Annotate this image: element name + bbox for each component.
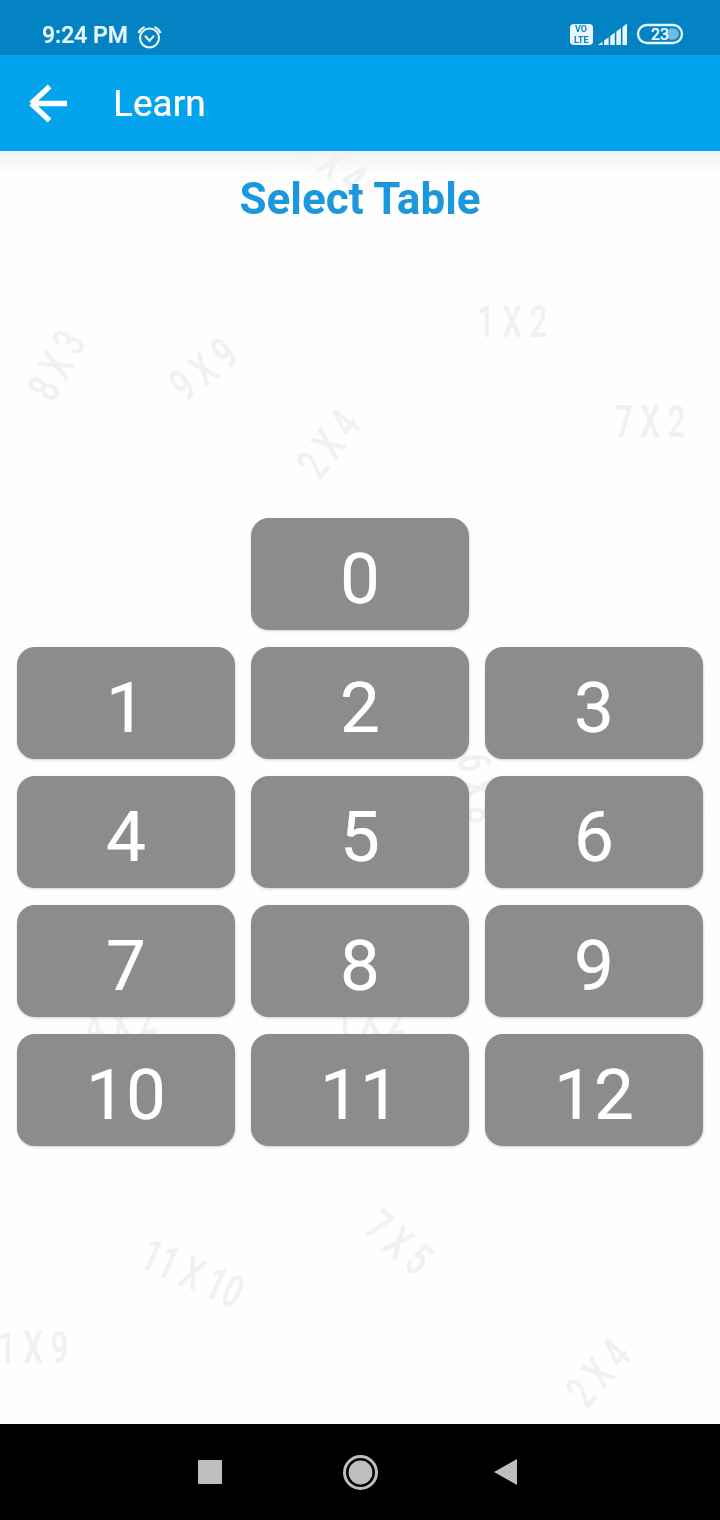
staticText: 6 X 8: [448, 749, 510, 828]
button[interactable]: 4: [17, 776, 235, 888]
staticText: 9: [574, 924, 614, 1007]
staticText: LTE: [574, 35, 589, 45]
staticText: 1 X 2: [477, 295, 548, 347]
staticText: 9 X 9: [159, 326, 247, 411]
button[interactable]: 10: [17, 1034, 235, 1146]
staticText: 4: [106, 795, 146, 878]
staticText: 2 X 4: [286, 399, 370, 488]
staticText: 7 X 4: [289, 151, 377, 205]
staticText: Learn: [113, 82, 206, 125]
button[interactable]: 0: [251, 518, 469, 630]
staticText: 12: [554, 1053, 634, 1136]
staticText: 4 X 2: [81, 991, 160, 1055]
staticText: 6: [574, 795, 614, 878]
staticText: 7 X 2: [615, 395, 686, 447]
staticText: 8: [340, 924, 380, 1007]
staticText: 11: [320, 1053, 400, 1136]
staticText: 11 X 10: [134, 1228, 252, 1318]
button[interactable]: Home: [312, 1424, 408, 1520]
staticText: 23: [651, 25, 670, 43]
staticText: 7 X 5: [355, 1199, 443, 1285]
button[interactable]: Navigate up: [0, 55, 96, 151]
button[interactable]: 6: [485, 776, 703, 888]
staticText: 8 X 3: [16, 321, 96, 408]
staticText: 1 X 2: [335, 993, 406, 1045]
button[interactable]: 11: [251, 1034, 469, 1146]
staticText: 1 X 9: [0, 1321, 69, 1373]
staticText: 0: [340, 537, 380, 620]
staticText: 5: [340, 795, 380, 878]
button[interactable]: Recent apps: [162, 1424, 258, 1520]
button[interactable]: 1: [17, 647, 235, 759]
button[interactable]: 3: [485, 647, 703, 759]
staticText: 2 X 4: [555, 1329, 641, 1416]
staticText: 3: [574, 666, 614, 749]
button[interactable]: 9: [485, 905, 703, 1017]
button[interactable]: 5: [251, 776, 469, 888]
button[interactable]: Back: [457, 1424, 553, 1520]
button[interactable]: 2: [251, 647, 469, 759]
button[interactable]: 8: [251, 905, 469, 1017]
button[interactable]: 7: [17, 905, 235, 1017]
staticText: Select Table: [0, 173, 720, 225]
staticText: 7: [106, 924, 146, 1007]
button[interactable]: 12: [485, 1034, 703, 1146]
staticText: 9:24 PM: [42, 22, 128, 49]
staticText: VO: [575, 24, 588, 35]
staticText: 1: [106, 666, 146, 749]
staticText: 10: [86, 1053, 166, 1136]
staticText: 2: [340, 666, 380, 749]
